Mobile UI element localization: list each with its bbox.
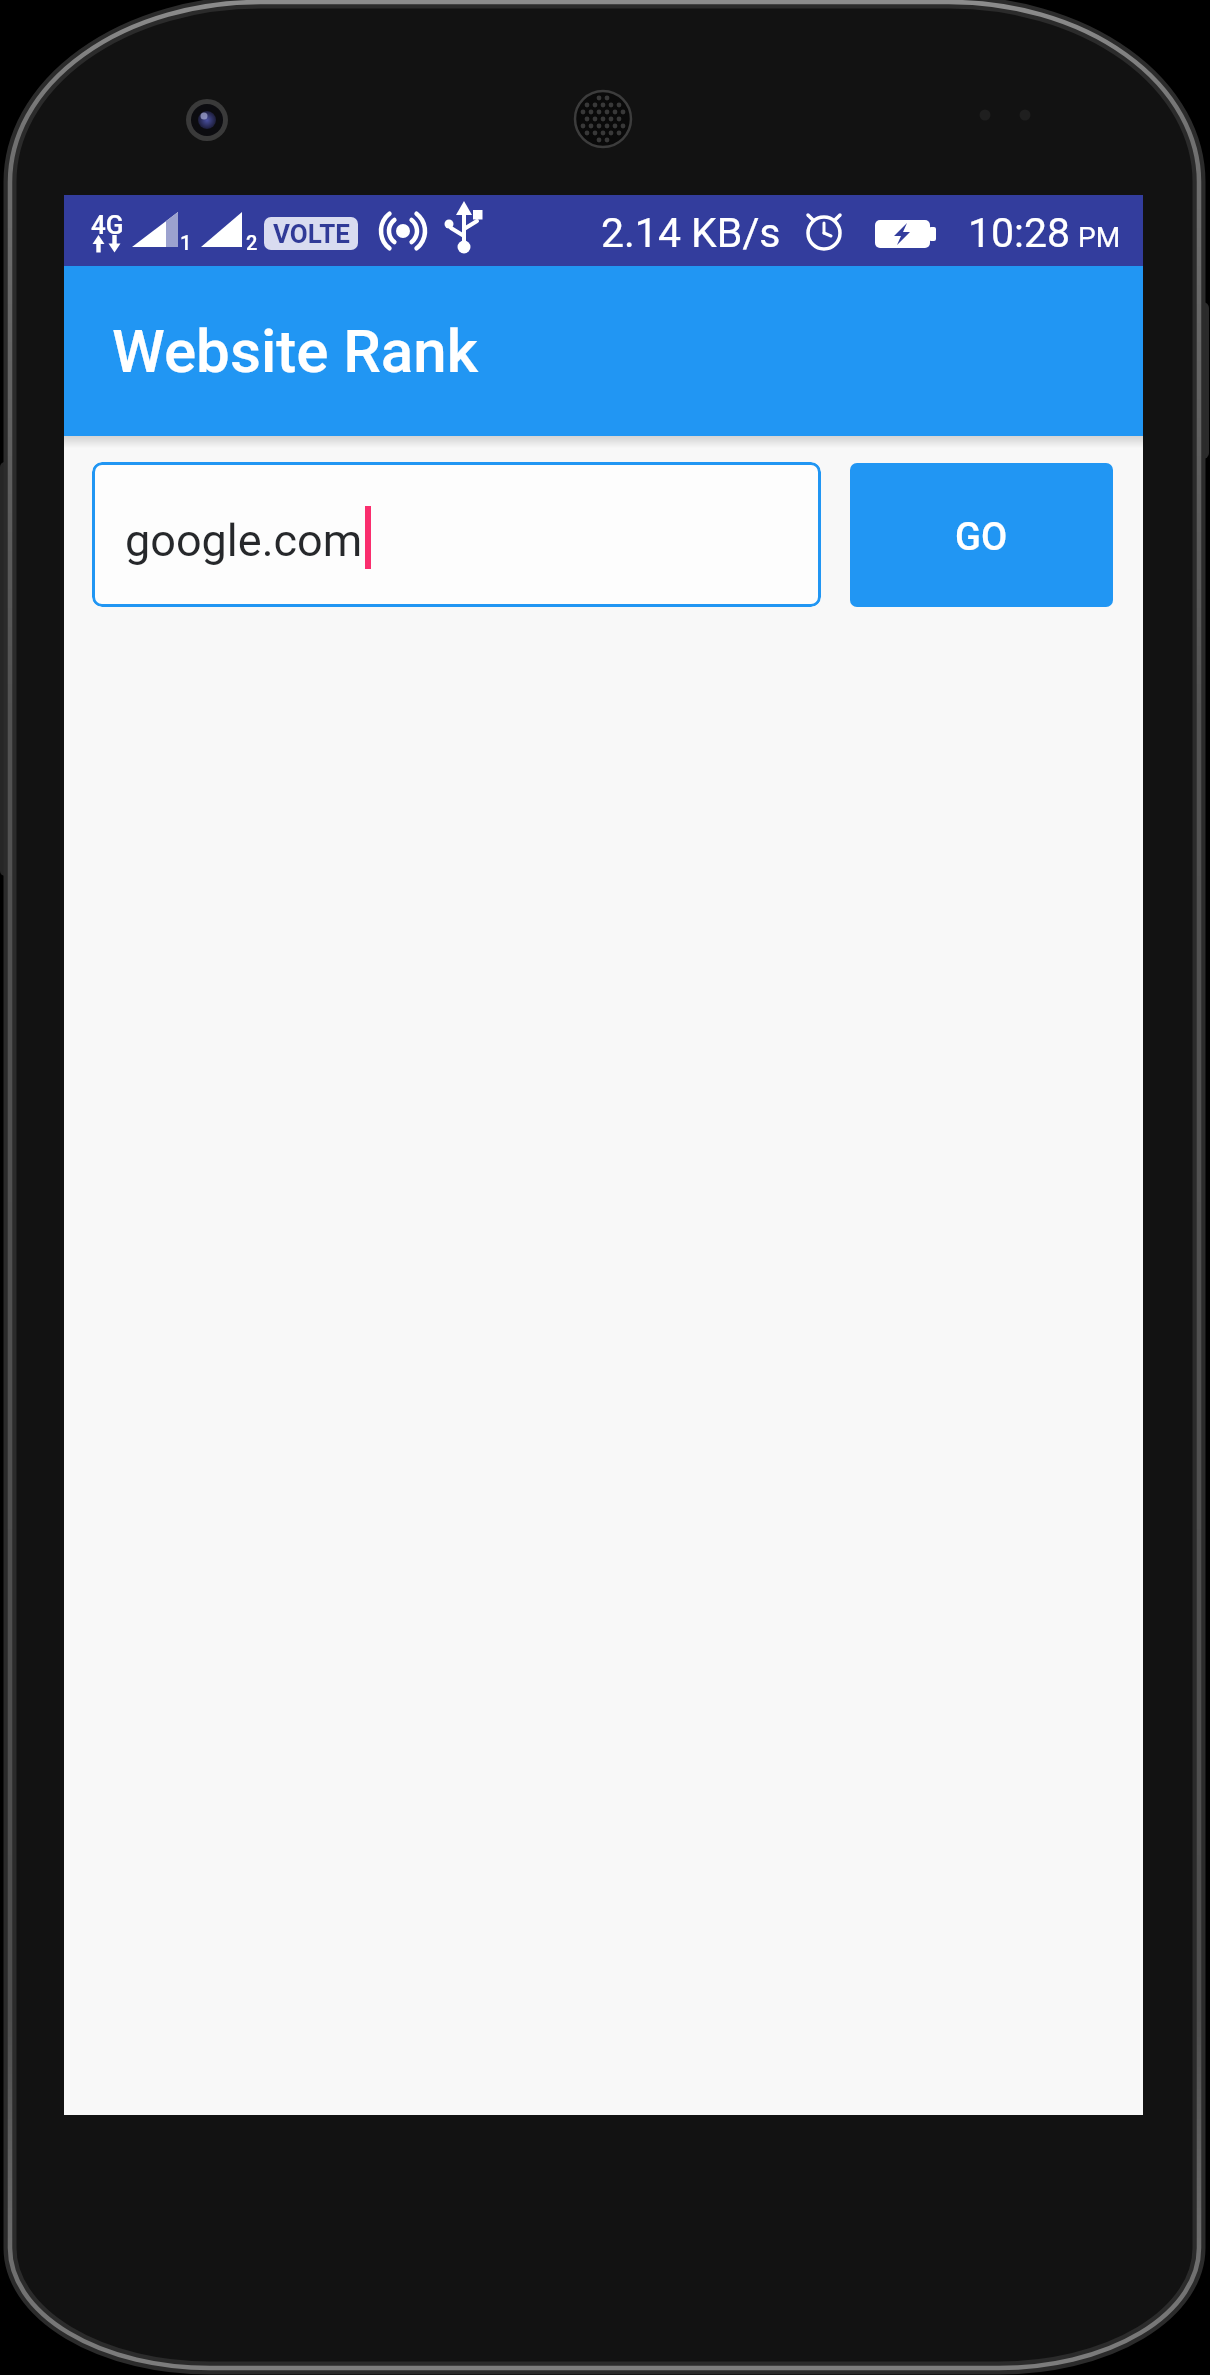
- staticText: 1: [180, 231, 192, 254]
- staticText: VOLTE: [273, 219, 350, 249]
- staticText: Website Rank: [112, 316, 479, 386]
- button[interactable]: google.com: [92, 462, 821, 607]
- staticText: google.com: [125, 514, 363, 567]
- staticText: 10:28: [968, 209, 1071, 257]
- button[interactable]: GO: [850, 463, 1113, 607]
- staticText: 2: [246, 231, 258, 254]
- staticText: 2.14 KB/s: [601, 209, 781, 257]
- staticText: GO: [955, 515, 1008, 560]
- staticText: PM: [1078, 221, 1121, 254]
- staticText: 4G: [91, 210, 124, 240]
